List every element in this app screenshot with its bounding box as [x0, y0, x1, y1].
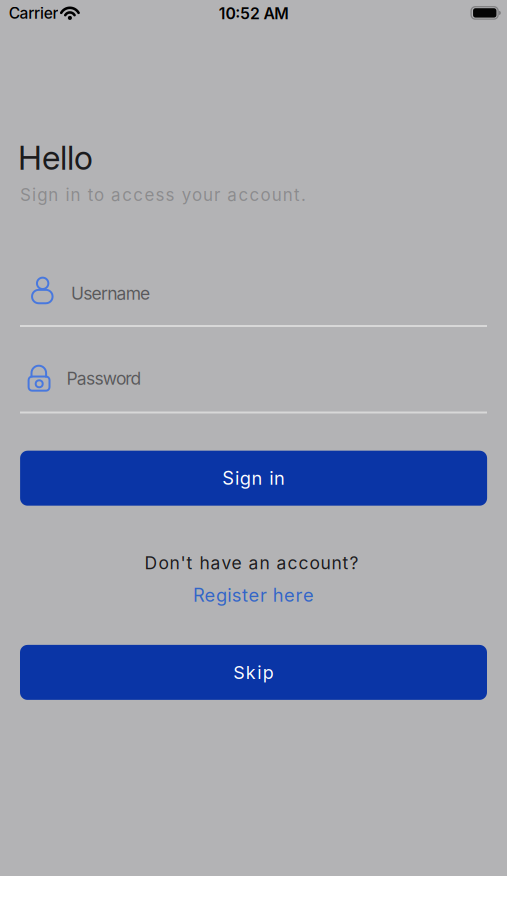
- button[interactable]: Sign in: [20, 451, 487, 506]
- staticText: Carrier: [9, 4, 58, 22]
- staticText: Password: [66, 368, 142, 389]
- button[interactable]: Username: [20, 277, 487, 327]
- staticText: Register here: [193, 584, 314, 606]
- staticText: Hello: [18, 138, 93, 178]
- staticText: Username: [71, 283, 150, 304]
- button[interactable]: Password: [20, 364, 487, 413]
- staticText: Skip: [233, 662, 274, 683]
- staticText: Sign in: [222, 467, 285, 489]
- staticText: Sign in to access your account.: [20, 185, 306, 205]
- button[interactable]: Skip: [20, 645, 487, 700]
- staticText: Don't have an account?: [144, 552, 358, 573]
- button[interactable]: Register here: [193, 584, 314, 606]
- staticText: 10:52 AM: [219, 4, 289, 23]
